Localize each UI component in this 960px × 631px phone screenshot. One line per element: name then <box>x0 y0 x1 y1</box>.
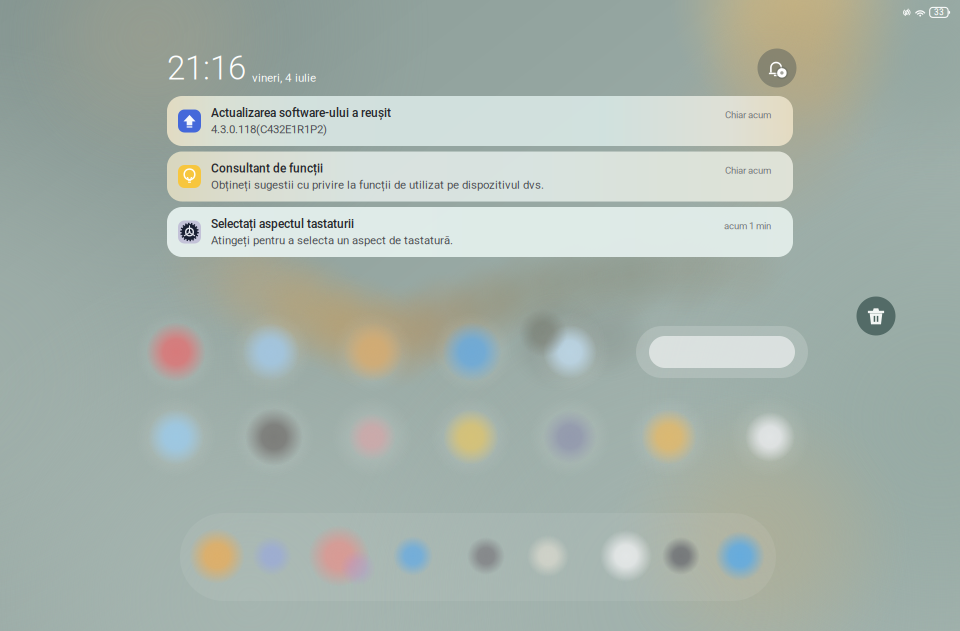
staticText: 4.3.0.118(C432E1R1P2) <box>211 123 327 136</box>
button[interactable]: Notification settings <box>757 48 796 87</box>
button[interactable]: Selectați aspectul tastaturii <box>167 207 793 257</box>
staticText: Obțineți sugestii cu privire la funcții … <box>211 178 544 192</box>
staticText: Selectați aspectul tastaturii <box>211 217 354 231</box>
staticText: Consultant de funcții <box>211 161 323 175</box>
staticText: acum 1 min <box>724 220 771 232</box>
staticText: Chiar acum <box>725 109 771 121</box>
staticText: vineri, 4 iulie <box>252 71 316 84</box>
button[interactable]: Actualizarea software-ului a reușit <box>167 96 793 146</box>
staticText: 21:16 <box>167 49 246 87</box>
button[interactable]: Clear all notifications <box>856 296 895 335</box>
staticText: 33 <box>934 7 944 17</box>
button[interactable]: Consultant de funcții <box>167 151 793 201</box>
staticText: Chiar acum <box>725 165 771 176</box>
staticText: Atingeți pentru a selecta un aspect de t… <box>211 234 453 247</box>
staticText: Actualizarea software-ului a reușit <box>211 106 391 120</box>
